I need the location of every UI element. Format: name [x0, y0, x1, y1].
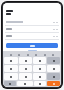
button[interactable] — [6, 43, 58, 48]
button[interactable] — [3, 26, 61, 33]
button[interactable]: Suggestion — [17, 53, 21, 56]
button[interactable]: Key — [4, 73, 18, 80]
button[interactable]: Key — [19, 57, 32, 64]
button[interactable]: Key — [47, 73, 60, 80]
button[interactable]: Key — [19, 73, 32, 80]
button[interactable]: Suggestion — [43, 53, 47, 56]
button[interactable]: Key — [33, 73, 46, 80]
button[interactable]: Suggestion — [34, 53, 38, 56]
button[interactable]: Period — [34, 81, 46, 86]
button[interactable] — [3, 19, 61, 26]
button[interactable]: Suggestion — [51, 53, 55, 56]
button[interactable]: Key — [33, 65, 46, 72]
button[interactable]: Suggestion — [9, 53, 13, 56]
button[interactable] — [3, 33, 61, 40]
button[interactable]: Key — [33, 57, 46, 64]
button[interactable]: Key — [4, 57, 18, 64]
button[interactable]: Key — [47, 57, 60, 64]
button[interactable]: Space — [17, 81, 33, 86]
button[interactable]: Key — [19, 65, 32, 72]
button[interactable] — [3, 50, 61, 51]
button[interactable]: Key — [4, 65, 18, 72]
button[interactable]: Enter — [47, 81, 60, 86]
button[interactable]: Suggestion — [26, 53, 30, 56]
button[interactable]: Key — [47, 65, 60, 72]
button[interactable]: Symbols — [4, 81, 16, 86]
